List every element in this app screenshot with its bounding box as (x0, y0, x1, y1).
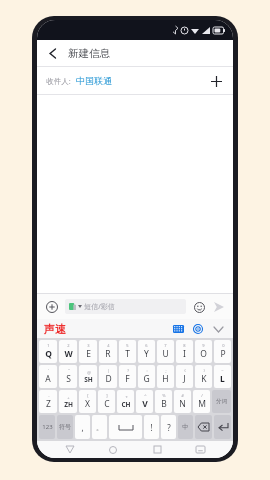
button[interactable]: 4 (99, 340, 117, 363)
staticText: ] (106, 393, 108, 398)
button[interactable]: 0 (214, 340, 231, 363)
staticText: " (68, 368, 70, 373)
button[interactable]: Send (211, 299, 227, 315)
staticText: 分词 (216, 398, 227, 405)
button[interactable]: 5 (119, 340, 136, 363)
button[interactable]: , (75, 415, 90, 439)
button[interactable]: Space (109, 415, 142, 439)
staticText: ^ (144, 393, 147, 398)
button[interactable]: 分词 (212, 390, 231, 413)
button[interactable]: # (174, 390, 191, 413)
staticText: H (162, 373, 169, 385)
button[interactable]: ; (157, 365, 174, 388)
staticText: K (201, 373, 207, 385)
staticText: + (67, 395, 70, 400)
staticText: 5 (126, 343, 129, 348)
staticText: | (107, 368, 110, 373)
staticText: S (66, 373, 71, 385)
button[interactable]: Enter (214, 415, 231, 439)
button[interactable]: [ (79, 390, 96, 413)
staticText: W (64, 348, 73, 360)
staticText: 2 (67, 343, 70, 348)
button[interactable]: Hide keyboard (190, 441, 210, 458)
button[interactable]: 声速 (44, 322, 66, 336)
button[interactable]: Hide keyboard (210, 321, 226, 337)
staticText: N (179, 398, 186, 410)
button[interactable]: 2 (59, 340, 77, 363)
button[interactable]: Delete (195, 415, 212, 439)
button[interactable]: ] (98, 390, 115, 413)
button[interactable]: ( (176, 365, 193, 388)
button[interactable]: 1 (39, 340, 57, 363)
staticText: ; (165, 368, 167, 373)
button[interactable]: | (99, 365, 117, 388)
button[interactable]: 符号 (57, 415, 73, 439)
button[interactable]: ? (119, 365, 136, 388)
staticText: G (143, 373, 150, 385)
button[interactable]: + (59, 390, 77, 413)
button[interactable]: Attach (43, 298, 61, 316)
staticText: ' (48, 368, 49, 373)
button[interactable]: 123 (39, 415, 55, 439)
staticText: ) (203, 368, 205, 373)
button[interactable]: - (39, 390, 57, 413)
button[interactable]: 6 (138, 340, 155, 363)
button[interactable]: Back (60, 441, 80, 458)
button[interactable]: 3 (79, 340, 97, 363)
button[interactable]: Add contact (207, 72, 225, 90)
staticText: 4 (107, 343, 110, 348)
staticText: 短信/彩信 (84, 302, 115, 312)
staticText: J (183, 373, 186, 385)
staticText: P (220, 348, 226, 360)
staticText: 。 (96, 423, 103, 432)
button[interactable]: Emoji (191, 299, 207, 315)
staticText: O (200, 348, 207, 360)
button[interactable]: ) (195, 365, 212, 388)
button[interactable]: ^ (136, 390, 153, 413)
button[interactable]: " (59, 365, 77, 388)
staticText: 新建信息 (68, 47, 110, 60)
button[interactable]: 9 (195, 340, 212, 363)
button[interactable]: ! (144, 415, 159, 439)
staticText: 中 (182, 423, 189, 431)
staticText: ? (127, 368, 129, 373)
staticText: ~ (221, 368, 224, 373)
staticText: C (104, 398, 110, 410)
button[interactable]: % (155, 390, 172, 413)
button[interactable]: Recents (147, 441, 167, 458)
staticText: 0 (222, 343, 225, 348)
staticText: B (161, 398, 167, 410)
staticText: 3 (87, 343, 90, 348)
button[interactable]: Settings (190, 321, 206, 337)
button[interactable]: 中 (178, 415, 193, 439)
button[interactable]: ' (39, 365, 57, 388)
staticText: @ (87, 370, 91, 375)
button[interactable]: 短信/彩信 (65, 299, 186, 314)
button[interactable]: * (117, 390, 134, 413)
button[interactable]: ? (161, 415, 176, 439)
staticText: U (162, 348, 169, 360)
staticText: SH (84, 375, 93, 384)
staticText: T (125, 348, 130, 360)
button[interactable]: Home (103, 441, 123, 458)
staticText: : (146, 368, 148, 373)
button[interactable]: 8 (176, 340, 193, 363)
staticText: 1 (47, 343, 50, 348)
button[interactable]: Back (44, 44, 62, 62)
staticText: ! (150, 422, 153, 433)
button[interactable]: / (193, 390, 210, 413)
button[interactable]: Keyboard layout (170, 321, 186, 337)
button[interactable]: @ (79, 365, 97, 388)
button[interactable]: : (138, 365, 155, 388)
staticText: 符号 (59, 423, 71, 431)
staticText: * (125, 395, 128, 400)
staticText: Y (144, 348, 149, 360)
staticText: 8 (183, 343, 186, 348)
button[interactable]: ~ (214, 365, 231, 388)
button[interactable]: 7 (157, 340, 174, 363)
staticText: ? (167, 422, 171, 433)
staticText: ( (184, 368, 186, 373)
button[interactable]: 。 (92, 415, 107, 439)
staticText: E (86, 348, 91, 360)
staticText: 中国联通 (76, 75, 112, 86)
